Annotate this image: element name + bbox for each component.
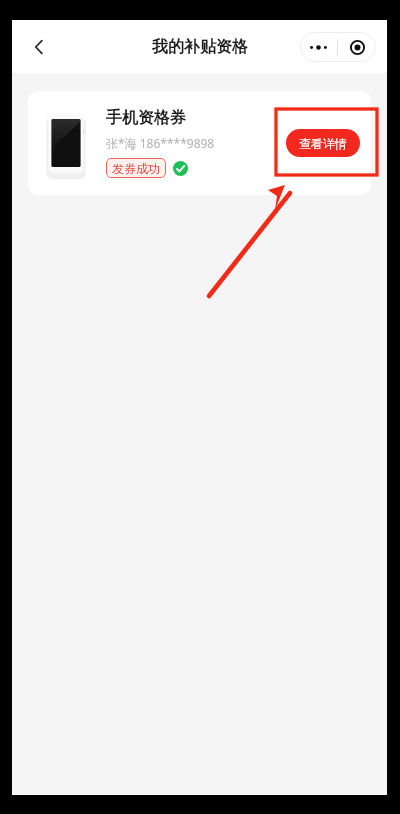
button[interactable]: Back [18, 26, 60, 68]
button[interactable]: Close [338, 32, 376, 62]
staticText: 查看详情 [299, 136, 347, 151]
button[interactable]: 手机资格券 [28, 91, 371, 195]
staticText: 张*海 186****9898 [106, 135, 215, 151]
staticText: 手机资格券 [106, 108, 186, 128]
button[interactable]: 查看详情 [286, 129, 360, 157]
staticText: 发券成功 [112, 161, 160, 176]
staticText: 我的补贴资格 [152, 37, 248, 57]
button[interactable]: More [300, 32, 337, 62]
